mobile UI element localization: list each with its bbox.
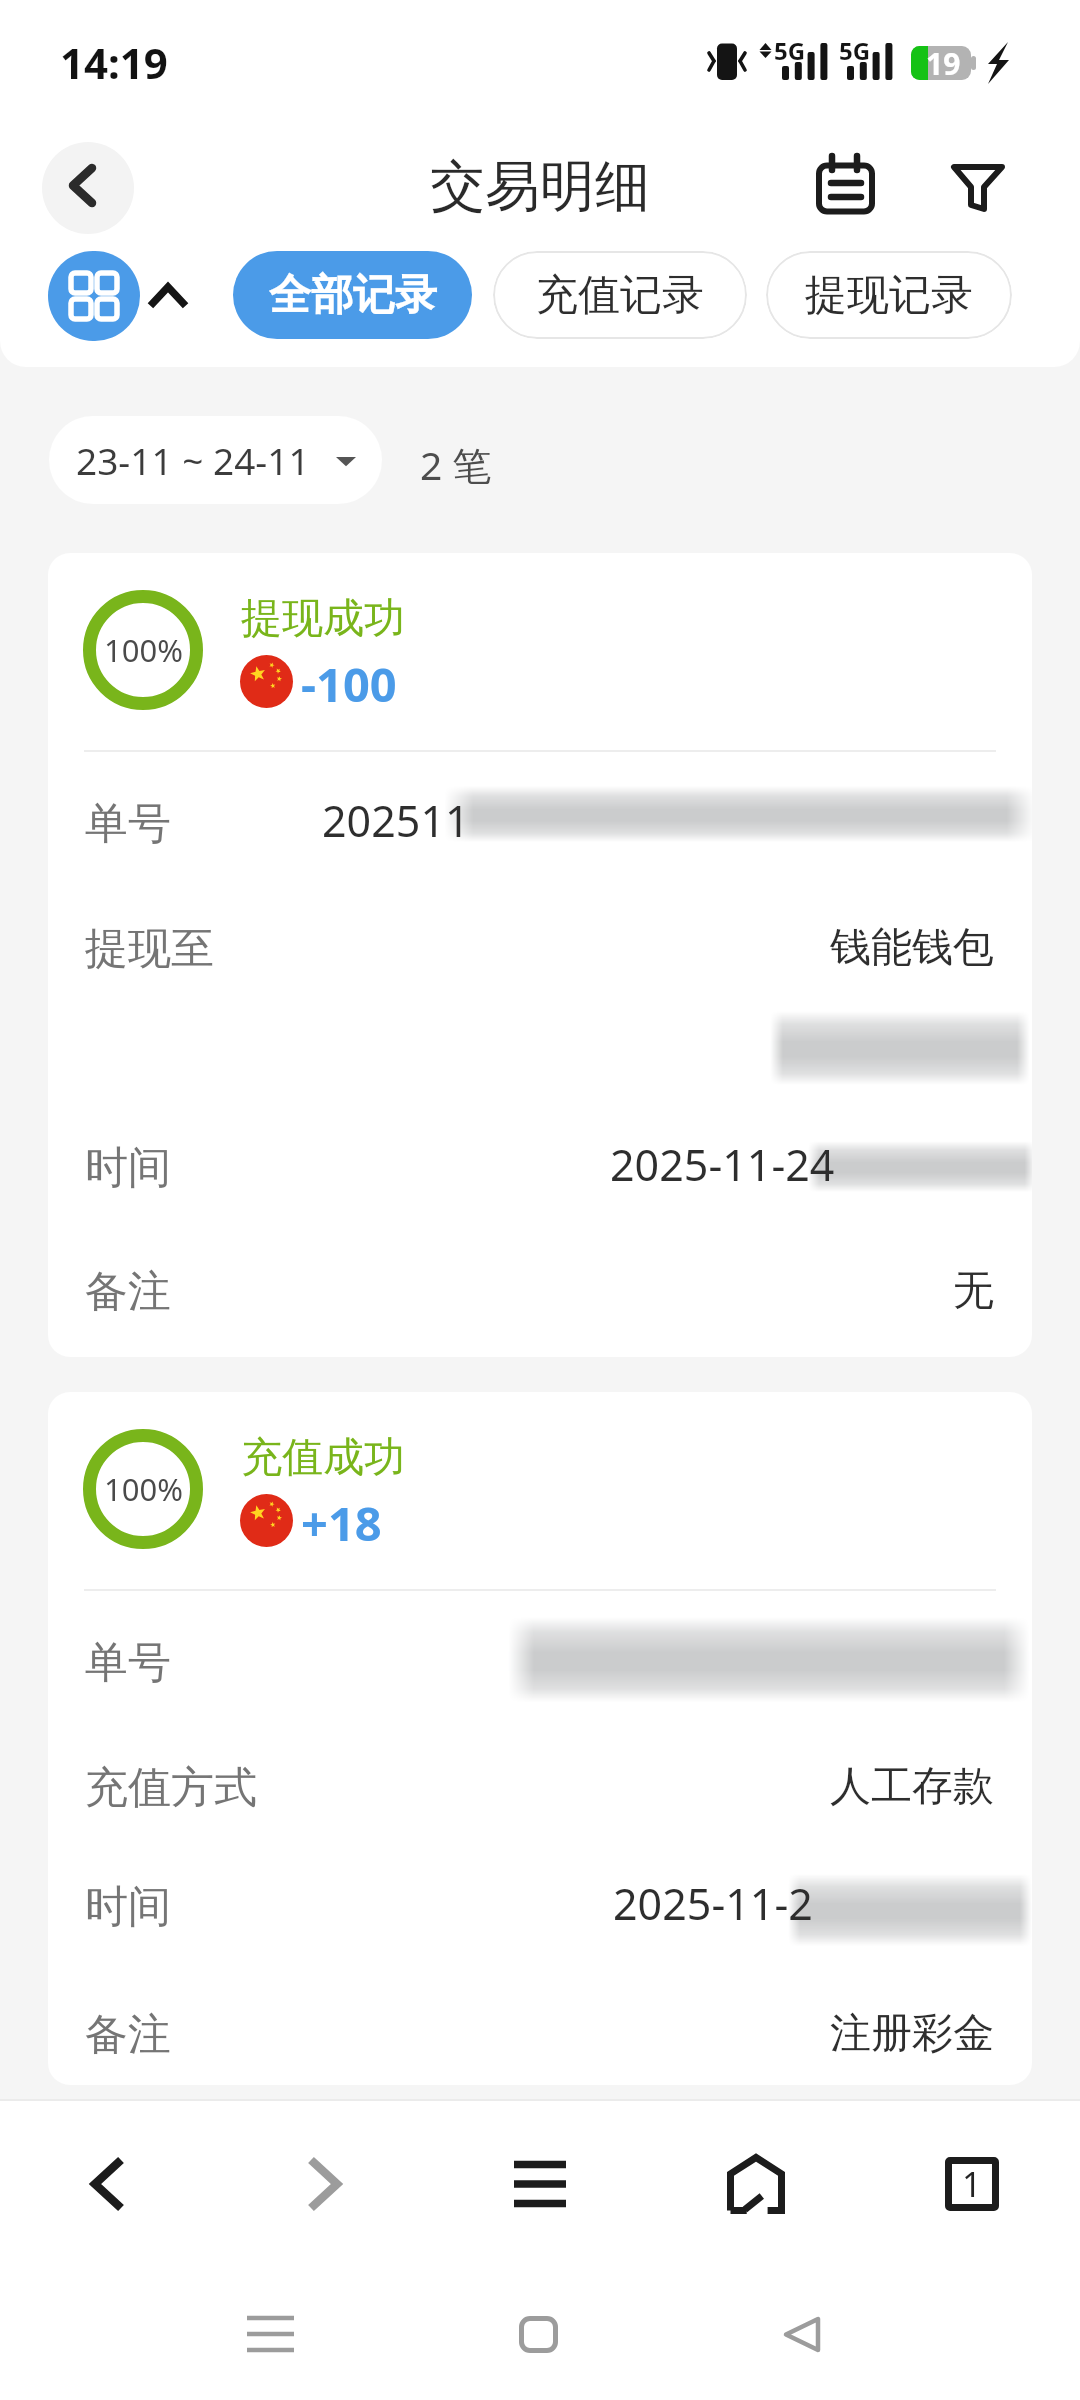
button[interactable]: 充值记录 [493,251,747,339]
button[interactable]: 100% [48,553,1032,1357]
staticText: 全部记录 [269,269,437,322]
staticText: 人工存款 [830,1761,994,1813]
staticText: 100% [104,629,183,671]
staticText: -100 [301,652,397,716]
button[interactable]: Calendar [794,140,896,230]
staticText: 充值记录 [536,269,704,322]
staticText: 注册彩金 [830,2008,994,2060]
staticText: 单号 [85,797,171,851]
button[interactable]: Recent apps [180,2274,360,2394]
staticText: 钱能钱包 [830,922,994,974]
button[interactable]: 全部记录 [233,251,472,339]
staticText: 备注 [85,2008,171,2062]
staticText: 时间 [85,1141,171,1195]
staticText: 2025-11-2 [613,1874,813,1933]
staticText: 时间 [85,1880,171,1934]
staticText: 23-11 ~ 24-11 [76,435,310,485]
button[interactable]: Back [0,2104,216,2264]
button[interactable]: Filter [935,155,1015,225]
staticText: 14:19 [60,34,168,91]
staticText: 1 [962,2161,982,2207]
button[interactable]: Home [448,2274,628,2394]
staticText: 单号 [85,1636,171,1690]
button[interactable]: Grid view [48,251,140,341]
button[interactable]: Tabs [864,2104,1080,2264]
button[interactable]: Forward [216,2104,432,2264]
button[interactable]: Menu [432,2104,648,2264]
staticText: 100% [104,1468,183,1510]
staticText: 交易明细 [430,152,650,221]
staticText: 2 笔 [420,438,492,491]
staticText: 5G [774,34,806,67]
staticText: 2025-11-24 [610,1135,835,1194]
staticText: 提现成功 [241,593,405,645]
button[interactable]: 23-11 ~ 24-11 [49,416,382,504]
staticText: 19 [926,43,961,84]
staticText: 备注 [85,1265,171,1319]
button[interactable]: Back [42,142,134,234]
button[interactable]: Home [648,2104,864,2264]
button[interactable]: 提现记录 [766,251,1012,339]
staticText: 提现至 [85,922,214,976]
staticText: 提现记录 [805,269,973,322]
staticText: 充值方式 [85,1761,257,1815]
button[interactable]: Back [712,2274,892,2394]
staticText: 无 [953,1265,994,1317]
staticText: 充值成功 [241,1432,405,1484]
button[interactable]: 100% [48,1392,1032,2085]
staticText: 202511 [322,791,470,850]
staticText: 5G [839,34,871,67]
staticText: +18 [301,1491,382,1555]
